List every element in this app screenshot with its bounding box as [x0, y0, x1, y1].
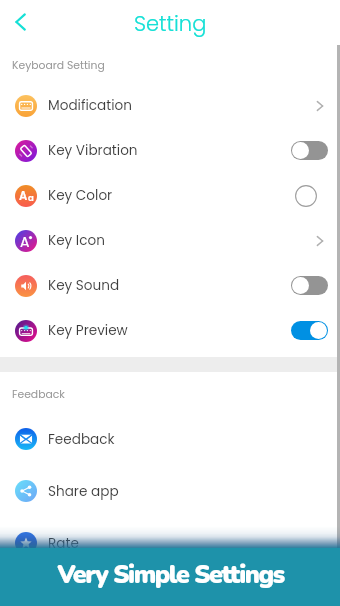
staticText: Key Color — [48, 186, 295, 205]
button[interactable]: Pick key colour — [295, 185, 328, 207]
button[interactable]: Switch on — [291, 321, 328, 340]
staticText: A — [20, 232, 30, 252]
staticText: Feedback — [48, 430, 328, 449]
staticText: Key Vibration — [48, 141, 291, 160]
button[interactable]: Key Preview — [0, 308, 340, 353]
button[interactable]: Rate — [0, 517, 340, 569]
staticText: Modification — [48, 96, 308, 115]
staticText: Key Icon — [48, 231, 308, 250]
staticText: Share app — [48, 482, 328, 501]
button[interactable]: A — [0, 218, 340, 263]
staticText: Feedback — [12, 387, 65, 402]
button[interactable]: Feedback — [0, 413, 340, 465]
staticText: a — [28, 192, 34, 204]
staticText: Keyboard Setting — [12, 58, 105, 73]
staticText: A — [19, 188, 28, 204]
button[interactable]: Modification — [0, 83, 340, 128]
staticText: Rate — [48, 534, 328, 553]
button[interactable]: Switch off — [291, 141, 328, 160]
button[interactable]: Share app — [0, 465, 340, 517]
button[interactable]: Back — [3, 6, 37, 40]
button[interactable]: Key Vibration — [0, 128, 340, 173]
staticText: Setting — [134, 9, 207, 38]
staticText: Key Sound — [48, 276, 291, 295]
button[interactable]: Key Sound — [0, 263, 340, 308]
staticText: Key Preview — [48, 321, 291, 340]
staticText: Very Simple Settings — [57, 558, 284, 592]
button[interactable]: Switch off — [291, 276, 328, 295]
button[interactable]: A — [0, 173, 340, 218]
